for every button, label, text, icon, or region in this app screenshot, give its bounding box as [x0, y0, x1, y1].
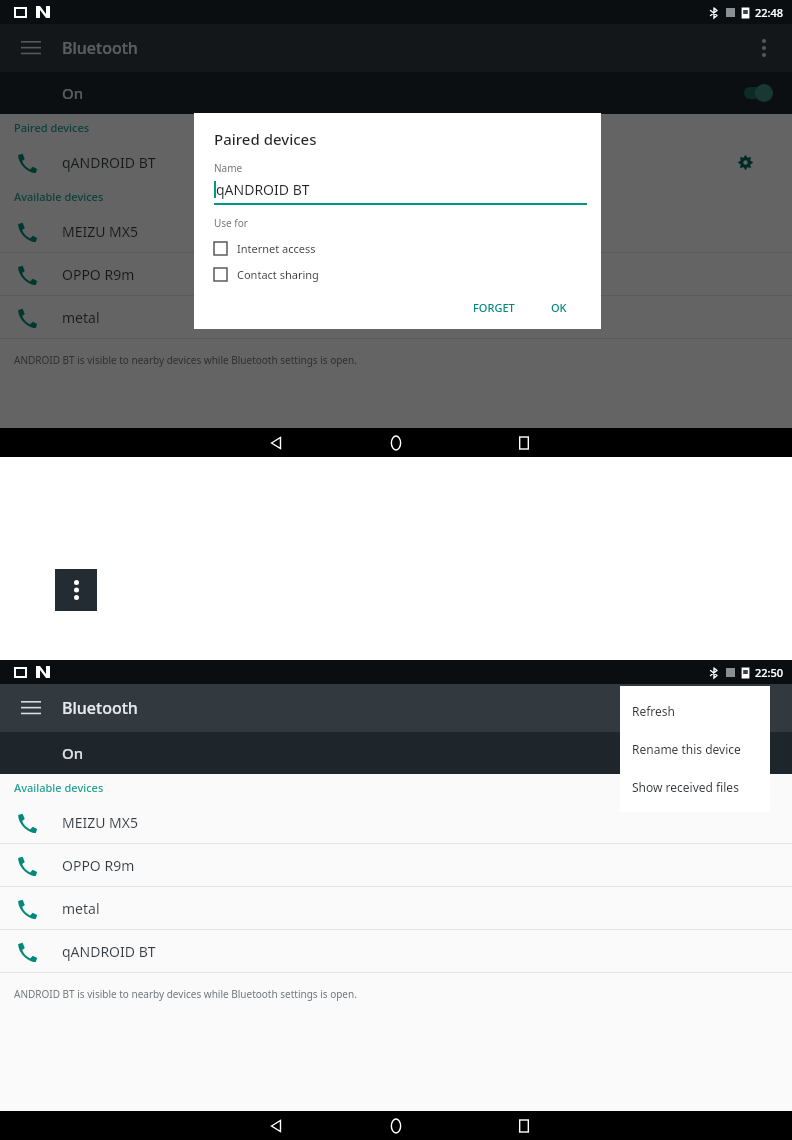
staticText: Show received files — [632, 779, 739, 795]
staticText: Paired devices — [14, 120, 90, 135]
button[interactable]: Back — [256, 428, 296, 457]
button[interactable]: Recent apps — [504, 428, 544, 457]
button[interactable]: OK — [543, 296, 575, 319]
button[interactable]: Show received files — [620, 768, 770, 806]
button[interactable]: Internet access — [214, 236, 587, 260]
button[interactable]: FORGET — [465, 296, 523, 319]
staticText: metal — [62, 899, 100, 918]
button[interactable]: Refresh — [620, 692, 770, 730]
button[interactable]: metal — [0, 887, 792, 929]
button[interactable]: Device settings — [730, 147, 760, 177]
staticText: metal — [62, 308, 100, 327]
button[interactable]: Recent apps — [504, 1111, 544, 1140]
staticText: ANDROID BT is visible to nearby devices … — [14, 987, 357, 1001]
button[interactable]: OPPO R9m — [0, 844, 792, 886]
button[interactable]: More options — [748, 32, 780, 64]
button[interactable]: MEIZU MX5 — [0, 210, 792, 252]
button[interactable]: Contact sharing — [214, 262, 587, 286]
staticText: MEIZU MX5 — [62, 222, 139, 241]
button[interactable]: On — [0, 72, 792, 114]
staticText: Paired devices — [214, 129, 317, 149]
button[interactable]: qANDROID BT — [0, 141, 792, 183]
staticText: MEIZU MX5 — [62, 813, 139, 832]
staticText: Internet access — [237, 241, 316, 256]
button[interactable]: Navigation menu — [16, 693, 46, 723]
button[interactable]: Navigation menu — [16, 33, 46, 63]
staticText: Refresh — [632, 703, 676, 719]
button[interactable]: OPPO R9m — [0, 253, 792, 295]
staticText: Name — [214, 161, 243, 175]
button[interactable]: Back — [256, 1111, 296, 1140]
staticText: Contact sharing — [237, 267, 319, 282]
staticText: qANDROID BT — [216, 180, 310, 199]
staticText: OPPO R9m — [62, 265, 135, 284]
staticText: Available devices — [14, 780, 104, 795]
button[interactable]: metal — [0, 296, 792, 338]
staticText: On — [62, 743, 84, 763]
button[interactable]: MEIZU MX5 — [0, 801, 792, 843]
staticText: Bluetooth — [62, 697, 138, 719]
button[interactable]: On — [0, 732, 792, 774]
button[interactable]: Home — [376, 428, 416, 457]
staticText: OK — [551, 300, 567, 315]
button[interactable]: Rename this device — [620, 730, 770, 768]
button[interactable]: qANDROID BT — [0, 930, 792, 972]
button[interactable]: Home — [376, 1111, 416, 1140]
staticText: 22:48 — [755, 5, 784, 20]
staticText: On — [62, 83, 84, 103]
staticText: OPPO R9m — [62, 856, 135, 875]
staticText: FORGET — [473, 300, 515, 315]
staticText: 22:50 — [755, 665, 784, 680]
button[interactable]: More options — [55, 569, 97, 611]
staticText: Use for — [214, 216, 248, 230]
staticText: ANDROID BT is visible to nearby devices … — [14, 353, 357, 367]
staticText: Rename this device — [632, 741, 741, 757]
staticText: qANDROID BT — [62, 153, 156, 172]
staticText: Available devices — [14, 189, 104, 204]
staticText: Bluetooth — [62, 37, 138, 59]
staticText: qANDROID BT — [62, 942, 156, 961]
button[interactable]: Bluetooth toggle — [730, 79, 774, 107]
